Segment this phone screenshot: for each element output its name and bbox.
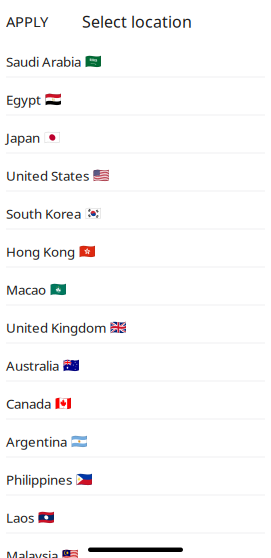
staticText: United States (6, 167, 89, 184)
button[interactable]: Saudi Arabia (0, 46, 271, 84)
staticText: 🇦🇺 (63, 358, 80, 373)
staticText: 🇰🇷 (85, 206, 102, 221)
button[interactable]: Japan (0, 122, 271, 160)
button[interactable]: Argentina (0, 426, 271, 464)
staticText: Argentina (6, 433, 67, 450)
staticText: Laos (6, 509, 34, 526)
staticText: Philippines (6, 471, 72, 488)
staticText: 🇵🇭 (76, 472, 93, 487)
staticText: 🇪🇬 (45, 92, 62, 107)
staticText: 🇱🇦 (38, 510, 55, 525)
staticText: United Kingdom (6, 319, 106, 336)
button[interactable]: Hong Kong (0, 236, 271, 274)
button[interactable]: Canada (0, 388, 271, 426)
button[interactable]: South Korea (0, 198, 271, 236)
button[interactable]: Australia (0, 350, 271, 388)
staticText: 🇬🇧 (110, 320, 127, 335)
staticText: 🇺🇸 (93, 168, 110, 183)
button[interactable]: United States (0, 160, 271, 198)
staticText: 🇨🇦 (55, 396, 72, 411)
staticText: APPLY (6, 12, 48, 31)
staticText: Egypt (6, 91, 41, 108)
staticText: South Korea (6, 205, 81, 222)
staticText: 🇭🇰 (79, 244, 96, 259)
button[interactable]: Malaysia (0, 540, 271, 558)
staticText: Saudi Arabia (6, 53, 81, 70)
staticText: Hong Kong (6, 243, 75, 260)
button[interactable]: APPLY (0, 8, 54, 35)
staticText: Select location (82, 11, 192, 32)
button[interactable]: Macao (0, 274, 271, 312)
button[interactable]: United Kingdom (0, 312, 271, 350)
staticText: Macao (6, 281, 46, 298)
staticText: 🇯🇵 (44, 130, 61, 145)
button[interactable]: Philippines (0, 464, 271, 502)
button[interactable]: Laos (0, 502, 271, 540)
staticText: Australia (6, 357, 59, 374)
staticText: Malaysia (6, 547, 58, 558)
staticText: Canada (6, 395, 51, 412)
staticText: Japan (6, 129, 40, 146)
staticText: 🇲🇾 (62, 548, 79, 558)
staticText: 🇦🇷 (71, 434, 88, 449)
staticText: 🇸🇦 (85, 54, 102, 69)
button[interactable]: Egypt (0, 84, 271, 122)
staticText: 🇲🇴 (50, 282, 67, 297)
